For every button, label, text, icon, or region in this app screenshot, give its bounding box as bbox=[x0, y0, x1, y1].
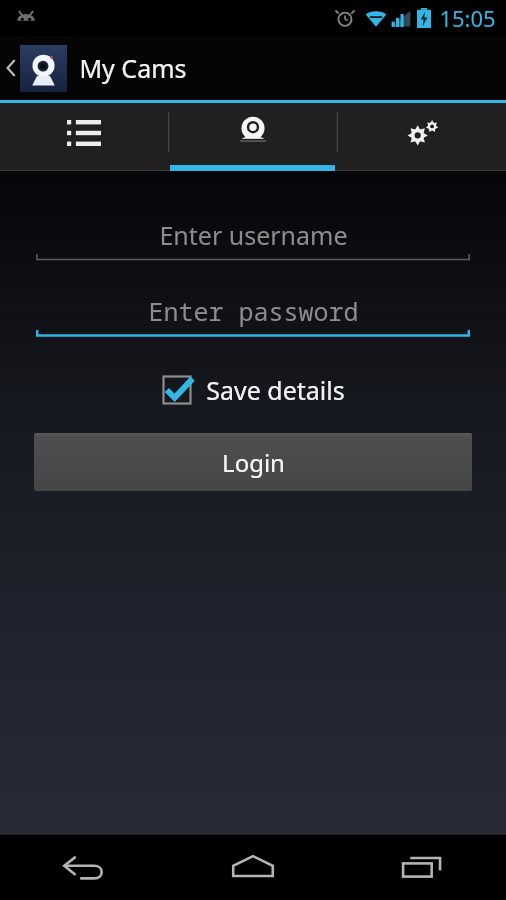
button[interactable]: List bbox=[0, 103, 168, 171]
staticText: Enter password bbox=[148, 294, 359, 328]
staticText: Save details bbox=[206, 373, 345, 407]
button[interactable]: Save details bbox=[154, 369, 353, 411]
button[interactable]: Password field bbox=[36, 291, 470, 341]
staticText: 15:05 bbox=[439, 3, 496, 33]
staticText: My Cams bbox=[79, 51, 187, 85]
button[interactable]: Navigate up, My Cams bbox=[0, 36, 506, 100]
button[interactable]: Login bbox=[34, 433, 472, 491]
button[interactable]: Cameras bbox=[168, 103, 337, 171]
staticText: Enter username bbox=[159, 218, 348, 252]
button[interactable]: Back bbox=[0, 834, 168, 900]
staticText: Login bbox=[222, 446, 285, 479]
button[interactable]: Home bbox=[168, 834, 337, 900]
button[interactable]: Settings bbox=[337, 103, 506, 171]
button[interactable]: Username field bbox=[36, 215, 470, 265]
button[interactable]: Recent apps bbox=[337, 834, 506, 900]
